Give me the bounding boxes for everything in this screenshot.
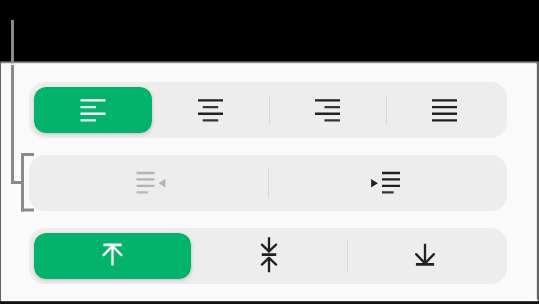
button[interactable]: Align right xyxy=(269,87,386,133)
button[interactable]: Align top xyxy=(34,233,191,279)
button[interactable]: Increase indent xyxy=(268,160,503,206)
button[interactable]: Align bottom xyxy=(347,233,503,279)
button[interactable]: Align middle xyxy=(191,233,347,279)
button[interactable]: Align center xyxy=(152,87,269,133)
button[interactable]: Align left xyxy=(34,87,152,133)
button[interactable]: Justify xyxy=(386,87,503,133)
button[interactable]: Decrease indent xyxy=(34,160,268,206)
